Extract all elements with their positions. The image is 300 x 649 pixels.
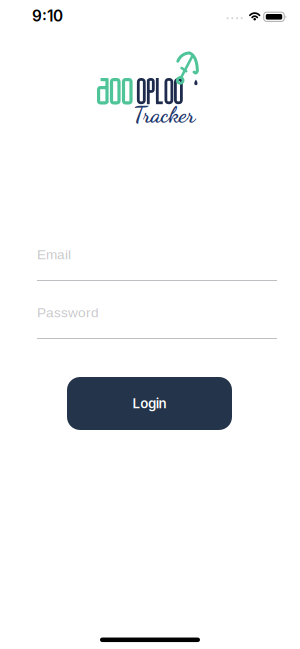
staticText: Login bbox=[133, 395, 166, 411]
staticText: Tracker bbox=[133, 101, 195, 128]
staticText: 9:10 bbox=[32, 7, 63, 25]
button[interactable]: Login bbox=[67, 377, 232, 430]
button[interactable]: Password bbox=[37, 305, 277, 339]
staticText: Password bbox=[37, 305, 99, 320]
button[interactable]: Email bbox=[37, 247, 277, 281]
staticText: Email bbox=[37, 247, 71, 262]
